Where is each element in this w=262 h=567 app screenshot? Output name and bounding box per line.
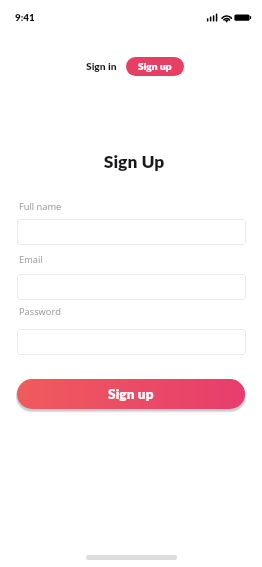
button[interactable]: Sign up [17, 379, 245, 409]
staticText: Email [19, 253, 43, 266]
staticText: Sign up [138, 60, 172, 72]
button[interactable]: Sign in [80, 55, 122, 76]
button[interactable] [17, 274, 246, 300]
staticText: Sign in [86, 60, 117, 72]
staticText: Full name [19, 200, 62, 213]
button[interactable] [17, 329, 246, 355]
staticText: Sign up [108, 386, 154, 402]
staticText: Sign Up [3, 151, 262, 567]
other: Status icons [206, 12, 252, 23]
button[interactable] [17, 219, 246, 245]
button[interactable]: Sign up [126, 57, 184, 76]
staticText: Password [19, 305, 61, 318]
staticText: 9:41 [15, 11, 35, 23]
